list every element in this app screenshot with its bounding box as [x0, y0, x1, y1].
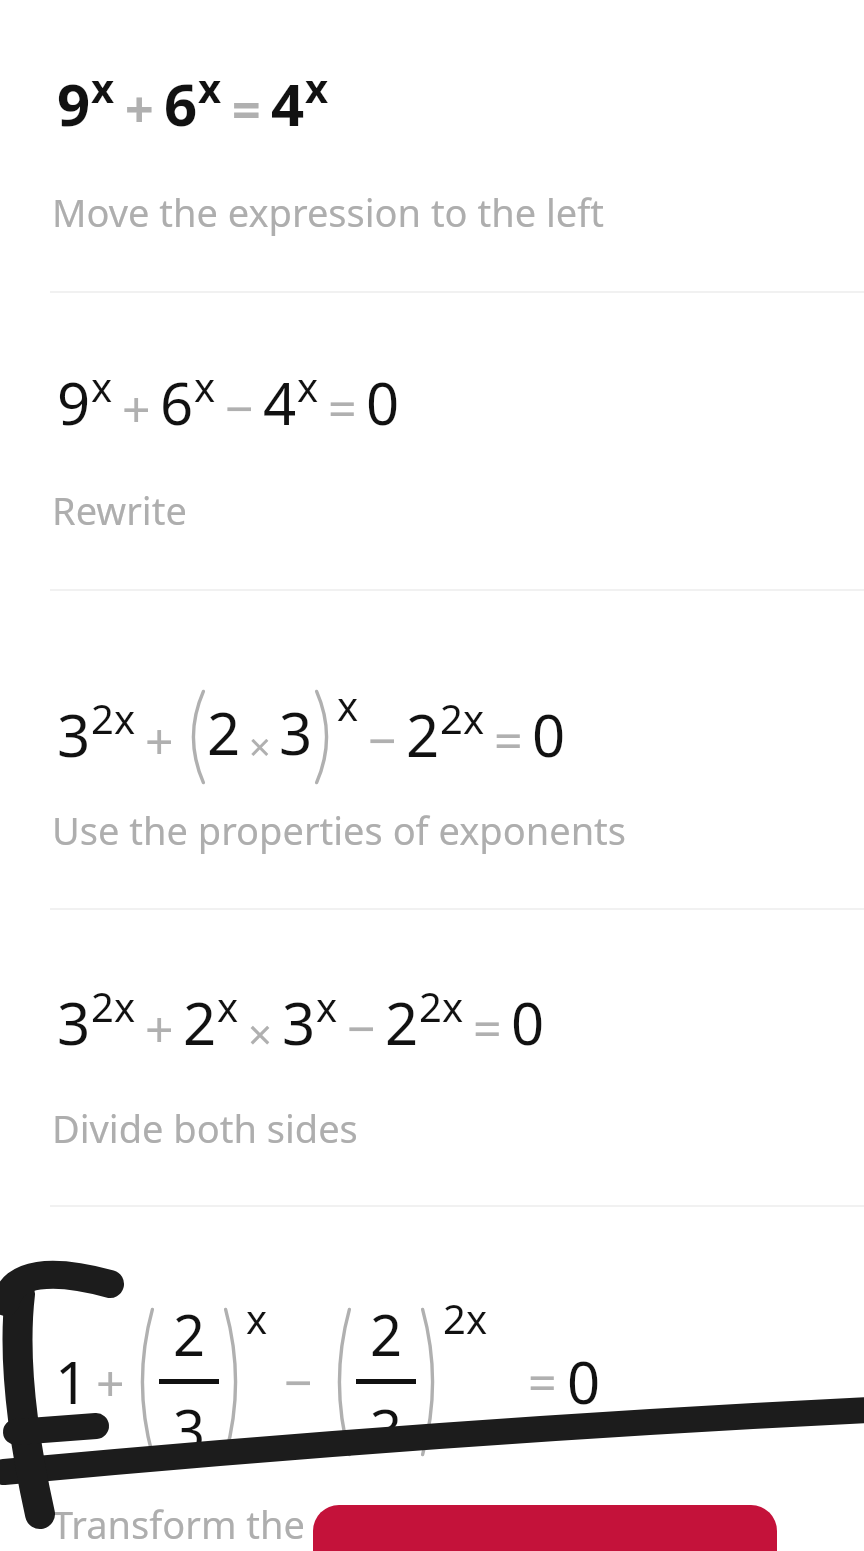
- button[interactable]: Continue: [313, 1505, 777, 1551]
- staticText: Transform the: [52, 1498, 305, 1550]
- staticText: 4: [271, 64, 305, 143]
- staticText: =: [328, 374, 357, 442]
- staticText: 4: [263, 363, 297, 442]
- staticText: x: [198, 60, 222, 114]
- staticText: 0: [567, 1342, 601, 1421]
- staticText: −: [368, 706, 397, 774]
- staticText: −: [225, 374, 254, 442]
- staticText: =: [528, 1348, 557, 1416]
- staticText: x: [217, 979, 239, 1033]
- staticText: 2: [183, 983, 217, 1062]
- staticText: 2: [207, 693, 241, 772]
- staticText: ×: [248, 1005, 273, 1062]
- staticText: 2: [370, 1296, 403, 1372]
- staticText: 0: [532, 695, 566, 774]
- staticText: Move the expression to the left: [52, 186, 605, 238]
- staticText: 2x: [440, 691, 485, 745]
- staticText: +: [145, 706, 174, 774]
- staticText: x: [337, 678, 359, 732]
- staticText: 2x: [419, 979, 464, 1033]
- staticText: =: [232, 75, 261, 143]
- staticText: +: [125, 75, 154, 143]
- staticText: 6: [160, 363, 194, 442]
- staticText: x: [316, 979, 338, 1033]
- staticText: 2x: [91, 979, 136, 1033]
- staticText: x: [297, 359, 319, 413]
- staticText: =: [494, 706, 523, 774]
- staticText: Divide both sides: [52, 1102, 358, 1154]
- staticText: Rewrite: [52, 484, 187, 536]
- staticText: x: [246, 1291, 268, 1345]
- staticText: −: [284, 1348, 313, 1416]
- staticText: 2x: [443, 1291, 488, 1345]
- staticText: 2: [385, 983, 419, 1062]
- staticText: 2x: [91, 691, 136, 745]
- staticText: x: [305, 60, 329, 114]
- staticText: −: [347, 994, 376, 1062]
- staticText: 2: [173, 1296, 206, 1372]
- staticText: 3: [57, 983, 91, 1062]
- staticText: 3: [279, 693, 313, 772]
- staticText: 3: [282, 983, 316, 1062]
- staticText: ×: [249, 720, 271, 772]
- staticText: x: [194, 359, 216, 413]
- staticText: 3: [173, 1391, 206, 1467]
- staticText: +: [145, 994, 174, 1062]
- staticText: =: [473, 994, 502, 1062]
- staticText: 3: [370, 1391, 403, 1467]
- staticText: 1: [55, 1342, 89, 1421]
- staticText: 3: [57, 695, 91, 774]
- staticText: 9: [57, 363, 91, 442]
- staticText: Use the properties of exponents: [52, 804, 627, 856]
- staticText: 0: [366, 363, 400, 442]
- staticText: 0: [511, 983, 545, 1062]
- staticText: 6: [164, 64, 198, 143]
- staticText: +: [122, 374, 151, 442]
- staticText: +: [96, 1348, 125, 1416]
- staticText: 2: [406, 695, 440, 774]
- staticText: 9: [57, 64, 91, 143]
- staticText: x: [91, 359, 113, 413]
- staticText: x: [91, 60, 115, 114]
